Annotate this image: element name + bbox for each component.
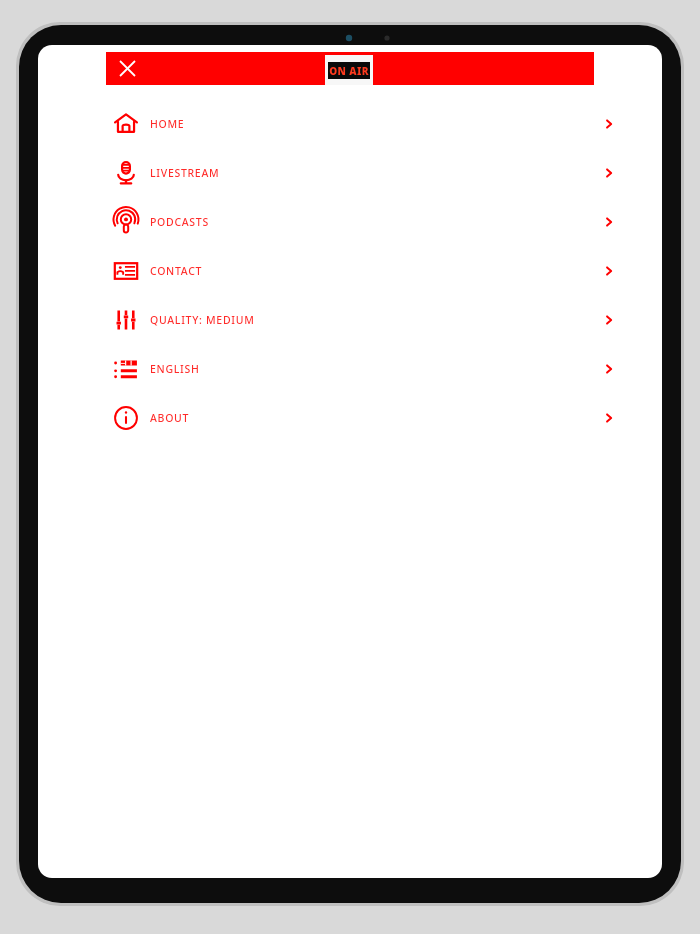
staticText: CONTACT	[150, 264, 203, 278]
staticText: PODCASTS	[150, 215, 209, 229]
button[interactable]: LIVESTREAM	[38, 148, 662, 197]
button[interactable]: ENGLISH	[38, 344, 662, 393]
button[interactable]: On Air	[325, 55, 373, 85]
button[interactable]: HOME	[38, 99, 662, 148]
staticText: ON AIR	[329, 64, 369, 78]
button[interactable]: ABOUT	[38, 393, 662, 442]
button[interactable]: QUALITY: MEDIUM	[38, 295, 662, 344]
staticText: ABOUT	[150, 411, 190, 425]
button[interactable]: PODCASTS	[38, 197, 662, 246]
button[interactable]: Close	[111, 52, 144, 85]
staticText: LIVESTREAM	[150, 166, 220, 180]
button[interactable]: CONTACT	[38, 246, 662, 295]
staticText: QUALITY: MEDIUM	[150, 313, 255, 327]
staticText: HOME	[150, 117, 185, 131]
staticText: ENGLISH	[150, 362, 200, 376]
